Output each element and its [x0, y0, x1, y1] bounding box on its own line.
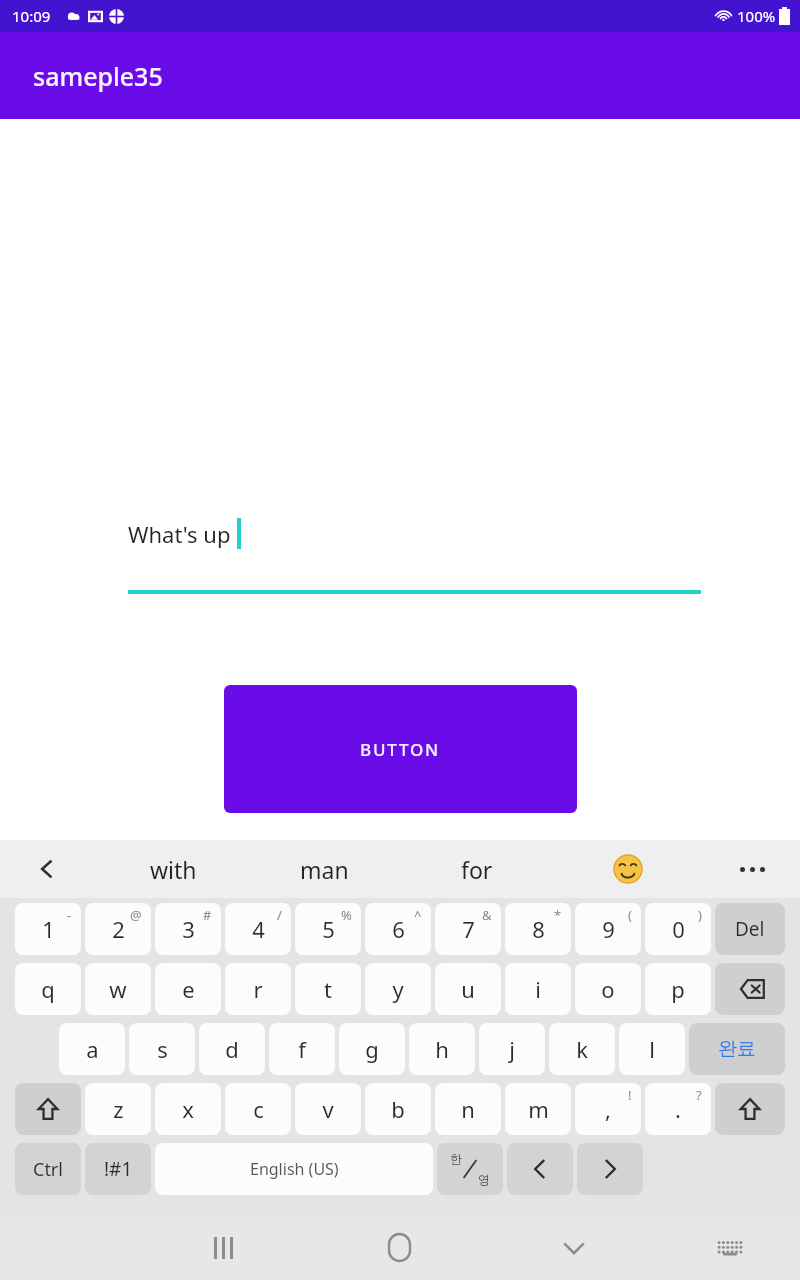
button[interactable]: Space [155, 1143, 433, 1195]
staticText: @ [130, 906, 142, 924]
button[interactable]: for [440, 843, 514, 895]
button[interactable]: j [479, 1023, 545, 1075]
button[interactable]: h [409, 1023, 475, 1075]
button[interactable]: BUTTON [224, 685, 577, 813]
staticText: & [482, 906, 492, 924]
button[interactable]: man [278, 843, 370, 895]
button[interactable]: p [645, 963, 711, 1015]
button[interactable]: Move cursor right [577, 1143, 643, 1195]
staticText: t [324, 974, 332, 1004]
button[interactable]: Home [362, 1215, 436, 1280]
button[interactable]: Del [715, 903, 785, 955]
staticText: ? [696, 1086, 702, 1104]
staticText: p [671, 974, 685, 1004]
button[interactable]: Hide keyboard [537, 1215, 611, 1280]
button[interactable]: x [155, 1083, 221, 1135]
button[interactable]: Previous suggestions [26, 848, 68, 890]
staticText: 2 [112, 914, 125, 944]
staticText: 영 [478, 1172, 490, 1187]
button[interactable]: 2 [85, 903, 151, 955]
button[interactable]: o [575, 963, 641, 1015]
button[interactable]: g [339, 1023, 405, 1075]
button[interactable]: Shift [15, 1083, 81, 1135]
button[interactable]: 8 [505, 903, 571, 955]
button[interactable]: Language [437, 1143, 503, 1195]
staticText: Del [735, 916, 765, 942]
staticText: 6 [392, 914, 405, 944]
button[interactable]: z [85, 1083, 151, 1135]
staticText: u [461, 974, 475, 1004]
staticText: d [225, 1034, 239, 1064]
button[interactable]: m [505, 1083, 571, 1135]
button[interactable]: More options [730, 847, 774, 891]
button[interactable]: . [645, 1083, 711, 1135]
staticText: 완료 [718, 1037, 756, 1061]
staticText: 5 [322, 914, 335, 944]
button[interactable]: Ctrl [15, 1143, 81, 1195]
staticText: !#1 [104, 1156, 133, 1182]
staticText: - [67, 906, 72, 924]
button[interactable]: y [365, 963, 431, 1015]
button[interactable]: s [129, 1023, 195, 1075]
staticText: r [253, 974, 263, 1004]
button[interactable]: Recent apps [186, 1215, 260, 1280]
button[interactable]: 4 [225, 903, 291, 955]
button[interactable]: Shift [715, 1083, 785, 1135]
staticText: sameple35 [33, 59, 163, 93]
staticText: q [41, 974, 55, 1004]
button[interactable]: !#1 [85, 1143, 151, 1195]
button[interactable]: 7 [435, 903, 501, 955]
button[interactable]: Change keyboard [693, 1215, 767, 1280]
staticText: j [509, 1034, 515, 1064]
button[interactable]: k [549, 1023, 615, 1075]
staticText: i [535, 974, 541, 1004]
button[interactable]: w [85, 963, 151, 1015]
button[interactable]: r [225, 963, 291, 1015]
staticText: ^ [414, 906, 422, 924]
staticText: , [605, 1094, 611, 1124]
staticText: o [601, 974, 615, 1004]
button[interactable]: f [269, 1023, 335, 1075]
staticText: h [435, 1034, 449, 1064]
staticText: ( [628, 906, 632, 924]
button[interactable]: 완료 [689, 1023, 785, 1075]
button[interactable]: c [225, 1083, 291, 1135]
button[interactable]: 9 [575, 903, 641, 955]
staticText: a [86, 1034, 99, 1064]
button[interactable]: 3 [155, 903, 221, 955]
staticText: x [182, 1094, 194, 1124]
staticText: y [392, 974, 404, 1004]
button[interactable]: e [155, 963, 221, 1015]
button[interactable]: t [295, 963, 361, 1015]
button[interactable]: 0 [645, 903, 711, 955]
button[interactable]: d [199, 1023, 265, 1075]
button[interactable]: q [15, 963, 81, 1015]
staticText: / [277, 906, 282, 924]
button[interactable]: a [59, 1023, 125, 1075]
staticText: f [298, 1034, 306, 1064]
staticText: v [322, 1094, 334, 1124]
button[interactable]: What's up [128, 504, 701, 594]
staticText: n [461, 1094, 475, 1124]
button[interactable]: v [295, 1083, 361, 1135]
button[interactable]: 6 [365, 903, 431, 955]
staticText: BUTTON [360, 738, 441, 761]
button[interactable]: l [619, 1023, 685, 1075]
button[interactable]: n [435, 1083, 501, 1135]
button[interactable]: u [435, 963, 501, 1015]
button[interactable]: Move cursor left [507, 1143, 573, 1195]
staticText: k [576, 1034, 588, 1064]
staticText: # [203, 906, 212, 924]
button[interactable]: , [575, 1083, 641, 1135]
button[interactable]: i [505, 963, 571, 1015]
button[interactable]: Emoji [606, 847, 650, 891]
button[interactable]: 5 [295, 903, 361, 955]
staticText: c [253, 1094, 264, 1124]
button[interactable]: b [365, 1083, 431, 1135]
button[interactable]: 1 [15, 903, 81, 955]
staticText: m [528, 1094, 549, 1124]
staticText: 7 [462, 914, 475, 944]
staticText: e [182, 974, 195, 1004]
button[interactable]: Backspace [715, 963, 785, 1015]
button[interactable]: with [128, 843, 218, 895]
